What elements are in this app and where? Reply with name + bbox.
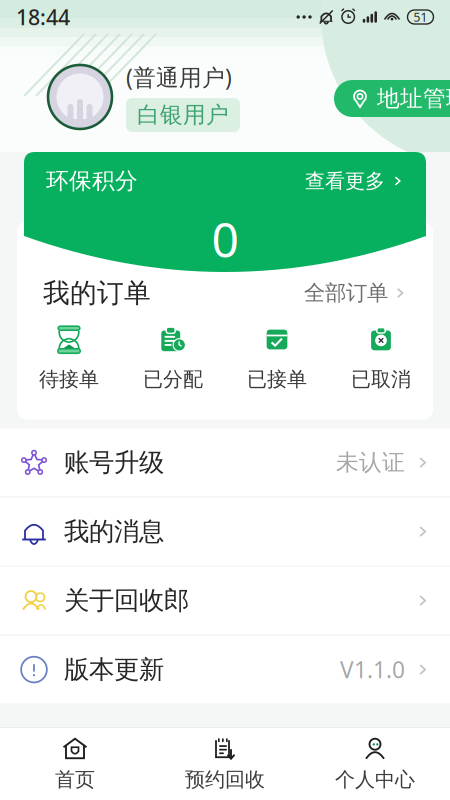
button[interactable]: 个人中心 (300, 736, 450, 792)
staticText: 我的订单 (43, 277, 151, 309)
staticText: 白银用户 (137, 101, 229, 129)
staticText: 待接单 (39, 367, 99, 392)
staticText: 51 (413, 9, 427, 25)
staticText: 地址管理 (377, 85, 450, 112)
staticText: 环保积分 (46, 167, 138, 195)
staticText: 首页 (55, 767, 95, 792)
staticText: 版本更新 (64, 654, 164, 685)
button[interactable]: 环保积分 (24, 152, 426, 210)
button[interactable]: 首页 (0, 736, 150, 792)
staticText: V1.1.0 (340, 654, 405, 685)
button[interactable]: 地址管理 (334, 80, 450, 117)
staticText: 账号升级 (64, 447, 164, 478)
staticText: 我的消息 (64, 516, 164, 547)
button[interactable]: 关于回收郎 (0, 567, 450, 635)
staticText: 预约回收 (185, 767, 265, 792)
button[interactable]: 预约回收 (150, 736, 300, 792)
button[interactable]: 已接单 (225, 326, 329, 392)
staticText: 已接单 (247, 367, 307, 392)
button[interactable]: 已取消 (329, 326, 433, 392)
button[interactable]: 我的订单 (17, 270, 433, 316)
button[interactable]: 已分配 (121, 326, 225, 392)
staticText: 关于回收郎 (64, 585, 189, 616)
staticText: 18:44 (16, 3, 70, 31)
staticText: 0 (211, 207, 238, 271)
button[interactable]: 我的消息 (0, 498, 450, 566)
button[interactable]: 账号升级 (0, 429, 450, 497)
button[interactable]: 版本更新 (0, 636, 450, 704)
staticText: 已分配 (143, 367, 203, 392)
staticText: 个人中心 (335, 767, 415, 792)
button[interactable]: 待接单 (17, 326, 121, 392)
staticText: 已取消 (351, 367, 411, 392)
staticText: 查看更多 (305, 169, 385, 193)
staticText: 全部订单 (304, 280, 388, 306)
staticText: (普通用户) (126, 62, 232, 92)
staticText: 未认证 (336, 449, 405, 476)
